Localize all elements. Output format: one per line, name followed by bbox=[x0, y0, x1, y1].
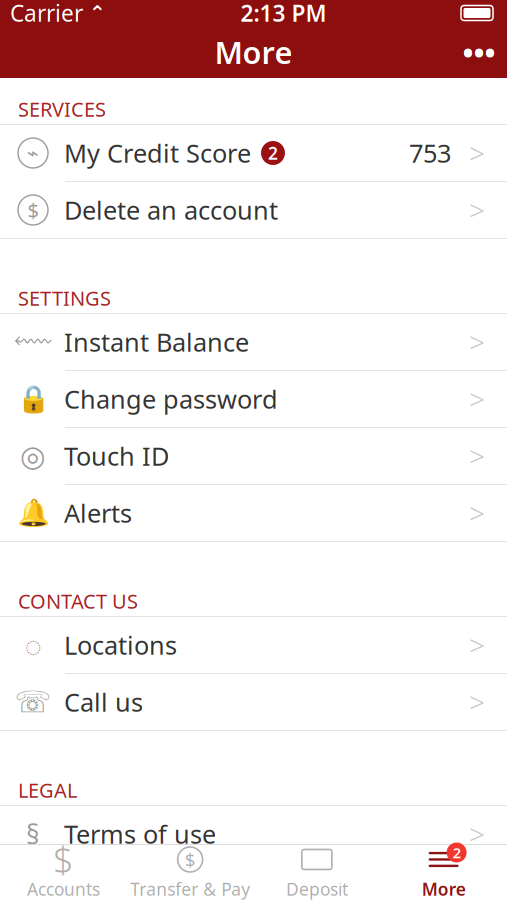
staticText: $ bbox=[185, 847, 196, 872]
button[interactable]: $ bbox=[127, 845, 254, 900]
button[interactable]: 🔔 bbox=[0, 485, 507, 541]
staticText: ••• bbox=[462, 32, 495, 71]
staticText: > bbox=[469, 494, 485, 532]
staticText: ⌁ bbox=[27, 142, 39, 164]
staticText: SERVICES bbox=[18, 96, 106, 122]
staticText: SETTINGS bbox=[18, 285, 111, 311]
staticText: ◎ bbox=[20, 439, 46, 473]
staticText: Touch ID bbox=[64, 439, 169, 473]
staticText: Alerts bbox=[64, 496, 132, 530]
button[interactable]: $ bbox=[0, 845, 127, 900]
staticText: > bbox=[469, 323, 485, 361]
staticText: 753 bbox=[409, 136, 451, 170]
staticText: LEGAL bbox=[18, 777, 77, 803]
staticText: Locations bbox=[64, 628, 177, 662]
staticText: > bbox=[469, 815, 485, 853]
staticText: > bbox=[469, 683, 485, 721]
staticText: 2 bbox=[453, 843, 461, 862]
staticText: Call us bbox=[64, 685, 143, 719]
staticText: More bbox=[214, 32, 292, 72]
button[interactable]: 2 bbox=[380, 845, 507, 900]
staticText: ☏ bbox=[14, 685, 51, 719]
staticText: CONTACT US bbox=[18, 588, 138, 614]
button[interactable]: ◎ bbox=[0, 428, 507, 484]
button[interactable]: Deposit bbox=[253, 845, 380, 900]
staticText: Instant Balance bbox=[64, 325, 249, 359]
staticText: $ bbox=[53, 836, 74, 883]
staticText: 2 bbox=[268, 141, 278, 164]
staticText: > bbox=[469, 626, 485, 664]
staticText: Carrier bbox=[10, 0, 83, 28]
button[interactable]: $ bbox=[0, 182, 507, 238]
staticText: > bbox=[469, 134, 485, 172]
staticText: 🔒 bbox=[16, 384, 49, 414]
staticText: More bbox=[422, 877, 466, 900]
staticText: 2:13 PM bbox=[240, 0, 326, 28]
staticText: My Credit Score bbox=[64, 136, 251, 170]
staticText: Deposit bbox=[286, 877, 348, 900]
staticText: Terms of use bbox=[64, 817, 216, 851]
button[interactable]: § bbox=[0, 806, 507, 862]
staticText: > bbox=[469, 437, 485, 475]
staticText: > bbox=[469, 191, 485, 229]
staticText: 🔔 bbox=[16, 498, 49, 528]
button[interactable]: 🔒 bbox=[0, 371, 507, 427]
staticText: ⌃ bbox=[89, 2, 106, 24]
staticText: ⬳ bbox=[14, 329, 52, 355]
button[interactable]: ◌ bbox=[0, 617, 507, 673]
button[interactable]: More options bbox=[451, 26, 507, 78]
staticText: > bbox=[469, 380, 485, 418]
staticText: ◌ bbox=[24, 625, 41, 664]
staticText: § bbox=[26, 816, 40, 852]
button[interactable]: ☏ bbox=[0, 674, 507, 730]
staticText: Delete an account bbox=[64, 193, 278, 227]
staticText: Change password bbox=[64, 382, 278, 416]
button[interactable]: ⬳ bbox=[0, 314, 507, 370]
button[interactable]: ⌁ bbox=[0, 125, 507, 181]
staticText: Accounts bbox=[27, 877, 100, 900]
staticText: Transfer & Pay bbox=[130, 877, 250, 900]
staticText: $ bbox=[27, 197, 38, 223]
